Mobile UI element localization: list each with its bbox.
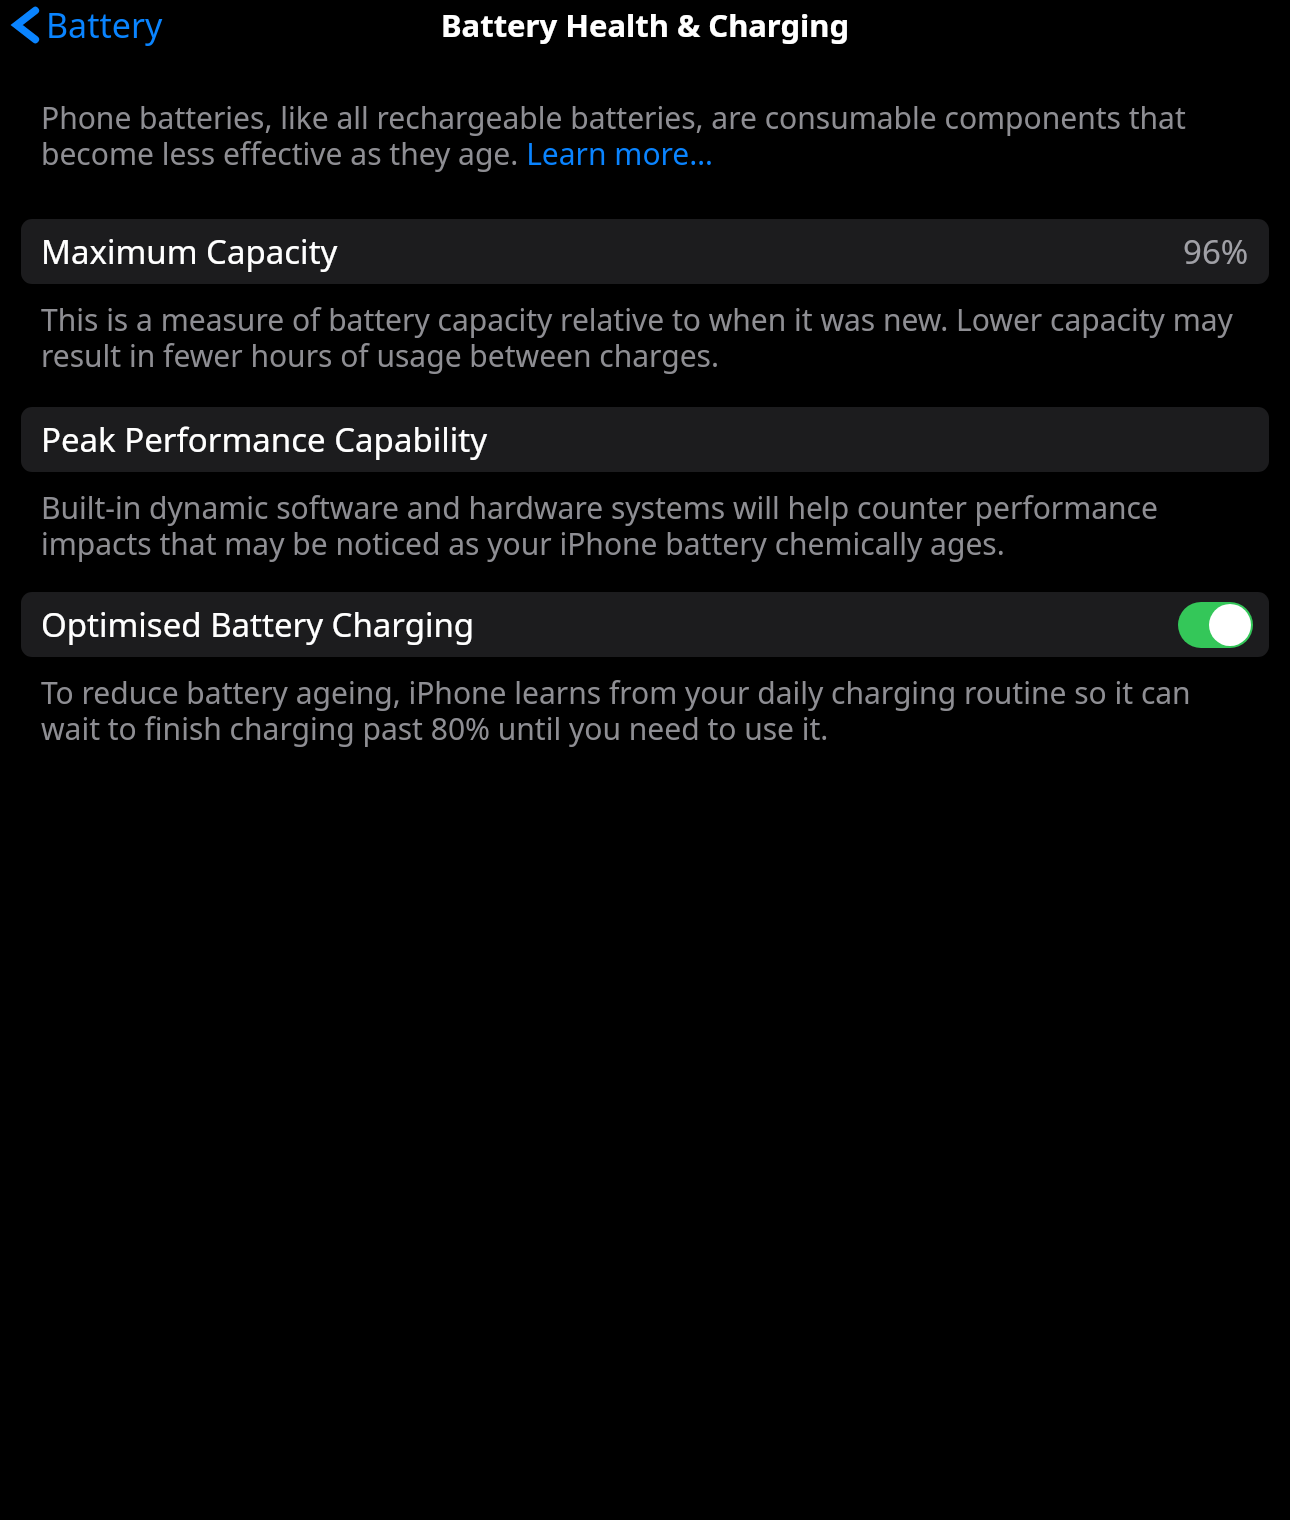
button[interactable]: Peak Performance Capability	[21, 407, 1269, 472]
staticText: Optimised Battery Charging	[41, 602, 475, 647]
staticText: Battery Health & Charging	[441, 4, 849, 46]
button[interactable]: Phone batteries, like all rechargeable b…	[41, 97, 1243, 174]
staticText: Maximum Capacity	[41, 229, 338, 274]
staticText: To reduce battery ageing, iPhone learns …	[41, 672, 1243, 749]
button[interactable]: Optimised Battery Charging	[21, 592, 1269, 657]
button[interactable]: Optimised Battery Charging toggle, on	[1178, 602, 1253, 648]
staticText: Built-in dynamic software and hardware s…	[41, 487, 1247, 564]
button[interactable]: Maximum Capacity	[21, 219, 1269, 284]
staticText: Peak Performance Capability	[41, 417, 487, 462]
button[interactable]: Battery	[13, 2, 163, 48]
staticText: Battery	[46, 2, 163, 48]
staticText: 96%	[1183, 229, 1249, 274]
staticText: This is a measure of battery capacity re…	[41, 299, 1241, 376]
